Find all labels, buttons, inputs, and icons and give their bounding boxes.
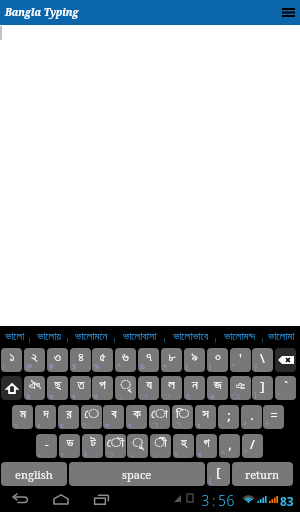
button[interactable]: ল: [161, 376, 182, 400]
staticText: ু: [132, 437, 143, 450]
staticText: *: [163, 362, 167, 372]
staticText: থ: [72, 393, 76, 400]
staticText: ং: [163, 393, 171, 400]
staticText: @: [26, 362, 33, 372]
staticText: Bangla Typing: [5, 5, 79, 19]
staticText: :: [220, 419, 222, 429]
button[interactable]: ছ: [47, 376, 68, 400]
staticText: ভালোমা: [268, 331, 295, 342]
staticText: !: [3, 362, 5, 372]
button[interactable]: [1, 376, 22, 400]
button[interactable]: ভালোয়: [30, 326, 68, 346]
button[interactable]: ৪: [70, 348, 91, 372]
staticText: ৫: [99, 351, 106, 364]
staticText: ঘ: [198, 451, 202, 458]
button[interactable]: .: [241, 405, 262, 429]
button[interactable]: [275, 348, 296, 372]
button[interactable]: ': [230, 348, 251, 372]
button[interactable]: Menu: [276, 0, 300, 25]
button[interactable]: ক: [126, 405, 147, 429]
button[interactable]: ভালোমনে: [68, 326, 115, 346]
staticText: ক: [133, 408, 141, 421]
button[interactable]: ব: [103, 405, 124, 429]
staticText: ড: [66, 437, 74, 450]
staticText: }: [254, 390, 257, 400]
staticText: space: [122, 467, 152, 482]
button[interactable]: ৭: [138, 348, 159, 372]
staticText: ভালোমনে: [75, 331, 108, 342]
button[interactable]: ,: [219, 434, 240, 458]
button[interactable]: space: [69, 462, 205, 486]
button[interactable]: ন: [184, 376, 205, 400]
button[interactable]: Recents: [89, 486, 113, 512]
button[interactable]: `: [275, 376, 296, 400]
staticText: &: [140, 362, 146, 372]
button[interactable]: ড: [59, 434, 80, 458]
button[interactable]: ঐৎ: [24, 376, 45, 400]
staticText: %: [94, 362, 100, 372]
button[interactable]: english: [1, 462, 67, 486]
staticText: ঢ: [61, 451, 64, 458]
staticText: english: [15, 467, 53, 482]
button[interactable]: /: [242, 434, 263, 458]
button[interactable]: জ: [207, 376, 228, 400]
button[interactable]: ৯: [184, 348, 205, 372]
button[interactable]: এঃ: [230, 376, 251, 400]
button[interactable]: ভালোমন্দ: [216, 326, 263, 346]
button[interactable]: ো: [149, 405, 170, 429]
staticText: >: [243, 419, 248, 429]
button[interactable]: র: [58, 405, 79, 429]
button[interactable]: -: [36, 434, 57, 458]
button[interactable]: Back: [8, 486, 32, 512]
staticText: ভালোবাসা: [123, 331, 157, 342]
button[interactable]: ে: [81, 405, 102, 429]
button[interactable]: =: [263, 405, 284, 429]
button[interactable]: স: [195, 405, 216, 429]
button[interactable]: প: [92, 376, 113, 400]
button[interactable]: ভালোবাসা: [115, 326, 165, 346]
button[interactable]: ৫: [92, 348, 113, 372]
button[interactable]: ০: [207, 348, 228, 372]
staticText: $: [72, 362, 77, 372]
button[interactable]: ম: [12, 405, 33, 429]
staticText: ভালোমন্দ: [224, 331, 256, 342]
staticText: দ: [43, 408, 49, 421]
button[interactable]: ৩: [47, 348, 68, 372]
staticText: ূ: [129, 451, 135, 458]
button[interactable]: ি: [172, 405, 193, 429]
button[interactable]: দ: [35, 405, 56, 429]
staticText: ঽ: [175, 451, 179, 458]
button[interactable]: return: [232, 462, 293, 486]
button[interactable]: ৮: [161, 348, 182, 372]
button[interactable]: ভালোমা: [263, 326, 300, 346]
button[interactable]: ৬: [115, 348, 136, 372]
button[interactable]: ভালো: [0, 326, 30, 346]
staticText: ণ: [186, 393, 189, 400]
button[interactable]: ত: [70, 376, 91, 400]
staticText: ,: [228, 435, 232, 453]
button[interactable]: Home: [49, 486, 73, 512]
button[interactable]: ী: [150, 434, 171, 458]
staticText: return: [245, 467, 280, 482]
button[interactable]: য: [138, 376, 159, 400]
button[interactable]: \: [252, 348, 273, 372]
staticText: \: [260, 349, 265, 367]
button[interactable]: ২: [24, 348, 45, 372]
button[interactable]: ু: [127, 434, 148, 458]
button[interactable]: ৃ: [115, 376, 136, 400]
button[interactable]: ট: [82, 434, 103, 458]
staticText: ৃ: [152, 451, 158, 458]
button[interactable]: হ: [173, 434, 194, 458]
button[interactable]: ]: [252, 376, 273, 400]
button[interactable]: [: [207, 462, 230, 486]
button[interactable]: গ: [196, 434, 217, 458]
staticText: ]: [260, 377, 265, 395]
staticText: ৌ: [107, 437, 124, 450]
button[interactable]: ১: [1, 348, 22, 372]
button[interactable]: ৌ: [105, 434, 126, 458]
button[interactable]: ভালোভাবে: [165, 326, 216, 346]
staticText: 83: [280, 493, 294, 509]
button[interactable]: ;: [218, 405, 239, 429]
staticText: ভালোভাবে: [173, 331, 209, 342]
staticText: ত: [77, 379, 85, 392]
